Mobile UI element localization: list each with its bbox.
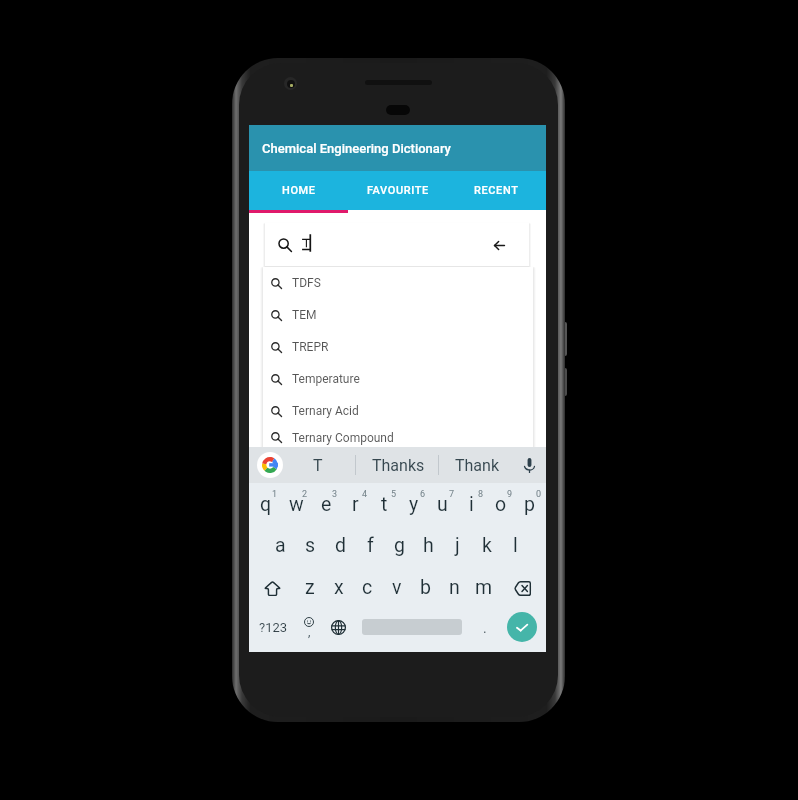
staticText: t — [381, 493, 388, 516]
button[interactable]: Voice input — [517, 451, 541, 479]
button[interactable]: TDFS — [263, 267, 533, 299]
staticText: 8 — [478, 489, 484, 500]
button[interactable]: Space — [356, 611, 466, 643]
staticText: n — [449, 576, 460, 599]
button[interactable]: FAVOURITE — [348, 171, 447, 210]
staticText: TDFS — [292, 276, 321, 290]
staticText: , — [308, 625, 311, 639]
button[interactable]: m — [469, 567, 498, 609]
button[interactable]: Shift — [249, 567, 296, 609]
button[interactable]: l — [501, 526, 530, 567]
staticText: d — [335, 534, 346, 557]
staticText: RECENT — [474, 184, 519, 197]
staticText: Thanks — [372, 456, 425, 475]
button[interactable]: Ternary Compound — [263, 427, 533, 448]
staticText: 4 — [362, 489, 368, 500]
button[interactable]: r — [341, 483, 370, 526]
button[interactable]: q — [251, 483, 281, 526]
button[interactable]: u — [428, 483, 457, 526]
staticText: s — [305, 534, 316, 557]
staticText: o — [495, 493, 507, 516]
button[interactable]: t — [370, 483, 399, 526]
button[interactable]: RECENT — [447, 171, 546, 210]
button[interactable]: Enter — [501, 610, 543, 644]
button[interactable]: Thanks — [360, 447, 436, 483]
button[interactable]: k — [472, 526, 501, 567]
button[interactable]: Back — [487, 233, 511, 257]
button[interactable]: Google — [257, 452, 283, 478]
button[interactable]: o — [486, 483, 515, 526]
staticText: Chemical Engineering Dictionary — [262, 141, 451, 156]
staticText: v — [392, 576, 402, 599]
staticText: e — [321, 493, 332, 516]
staticText: 6 — [420, 489, 426, 500]
button[interactable]: c — [353, 567, 382, 609]
button[interactable]: x — [324, 567, 353, 609]
button[interactable]: Emoji — [294, 613, 324, 641]
staticText: FAVOURITE — [367, 184, 429, 197]
staticText: 9 — [507, 489, 513, 500]
staticText: TEM — [292, 308, 317, 322]
button[interactable]: n — [440, 567, 469, 609]
button[interactable]: s — [295, 526, 325, 567]
button[interactable]: g — [385, 526, 414, 567]
staticText: 3 — [332, 489, 338, 500]
button[interactable]: d — [325, 526, 355, 567]
button[interactable]: Thank — [439, 447, 515, 483]
staticText: . — [483, 620, 487, 636]
staticText: q — [260, 493, 272, 516]
button[interactable]: Backspace — [498, 567, 546, 609]
button[interactable]: i — [457, 483, 486, 526]
button[interactable]: . — [471, 613, 499, 641]
staticText: ?123 — [259, 620, 288, 635]
staticText: g — [394, 534, 405, 557]
staticText: i — [469, 493, 474, 516]
button[interactable]: f — [355, 526, 385, 567]
staticText: 5 — [391, 489, 397, 500]
button[interactable]: j — [443, 526, 472, 567]
button[interactable]: Back — [265, 223, 529, 266]
button[interactable]: v — [382, 567, 411, 609]
staticText: k — [482, 534, 492, 557]
staticText: HOME — [282, 184, 316, 197]
staticText: 2 — [302, 489, 308, 500]
button[interactable]: a — [265, 526, 295, 567]
staticText: 1 — [272, 489, 278, 500]
staticText: p — [524, 493, 535, 516]
staticText: 7 — [449, 489, 455, 500]
staticText: 0 — [536, 489, 542, 500]
button[interactable]: z — [296, 567, 324, 609]
button[interactable]: TEM — [263, 299, 533, 331]
button[interactable]: y — [399, 483, 428, 526]
staticText: c — [362, 576, 373, 599]
staticText: a — [275, 534, 286, 557]
staticText: u — [437, 493, 448, 516]
button[interactable]: p — [515, 483, 544, 526]
staticText: f — [367, 534, 374, 557]
button[interactable]: T — [280, 447, 356, 483]
staticText: b — [420, 576, 431, 599]
staticText: w — [289, 493, 304, 516]
button[interactable]: HOME — [249, 171, 348, 210]
button[interactable]: Ternary Acid — [263, 395, 533, 427]
button[interactable]: Temperature — [263, 363, 533, 395]
button[interactable]: e — [311, 483, 341, 526]
staticText: x — [334, 576, 344, 599]
button[interactable]: w — [281, 483, 311, 526]
button[interactable]: Language — [324, 613, 353, 641]
staticText: Temperature — [292, 372, 360, 386]
staticText: TREPR — [292, 340, 329, 354]
staticText: j — [455, 534, 460, 557]
staticText: Thank — [455, 456, 500, 475]
staticText: m — [475, 576, 493, 599]
button[interactable]: h — [414, 526, 443, 567]
staticText: T — [313, 456, 323, 475]
staticText: r — [352, 493, 359, 516]
staticText: l — [513, 534, 518, 557]
staticText: Ternary Compound — [292, 431, 394, 445]
staticText: y — [409, 493, 419, 516]
button[interactable]: ?123 — [251, 613, 295, 641]
staticText: Ternary Acid — [292, 404, 359, 418]
button[interactable]: b — [411, 567, 440, 609]
button[interactable]: TREPR — [263, 331, 533, 363]
